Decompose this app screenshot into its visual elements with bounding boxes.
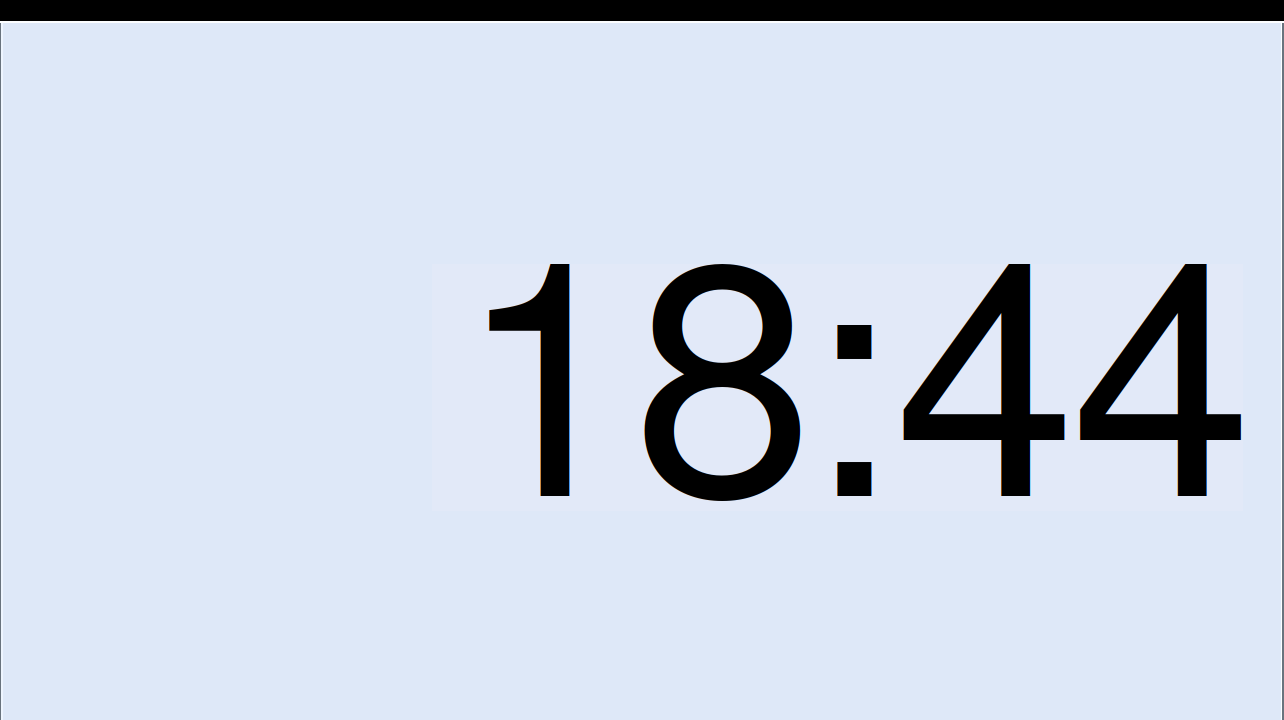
staticText: 18:44 [456, 121, 1253, 589]
button[interactable]: Current time, 18:44 [432, 264, 1243, 511]
